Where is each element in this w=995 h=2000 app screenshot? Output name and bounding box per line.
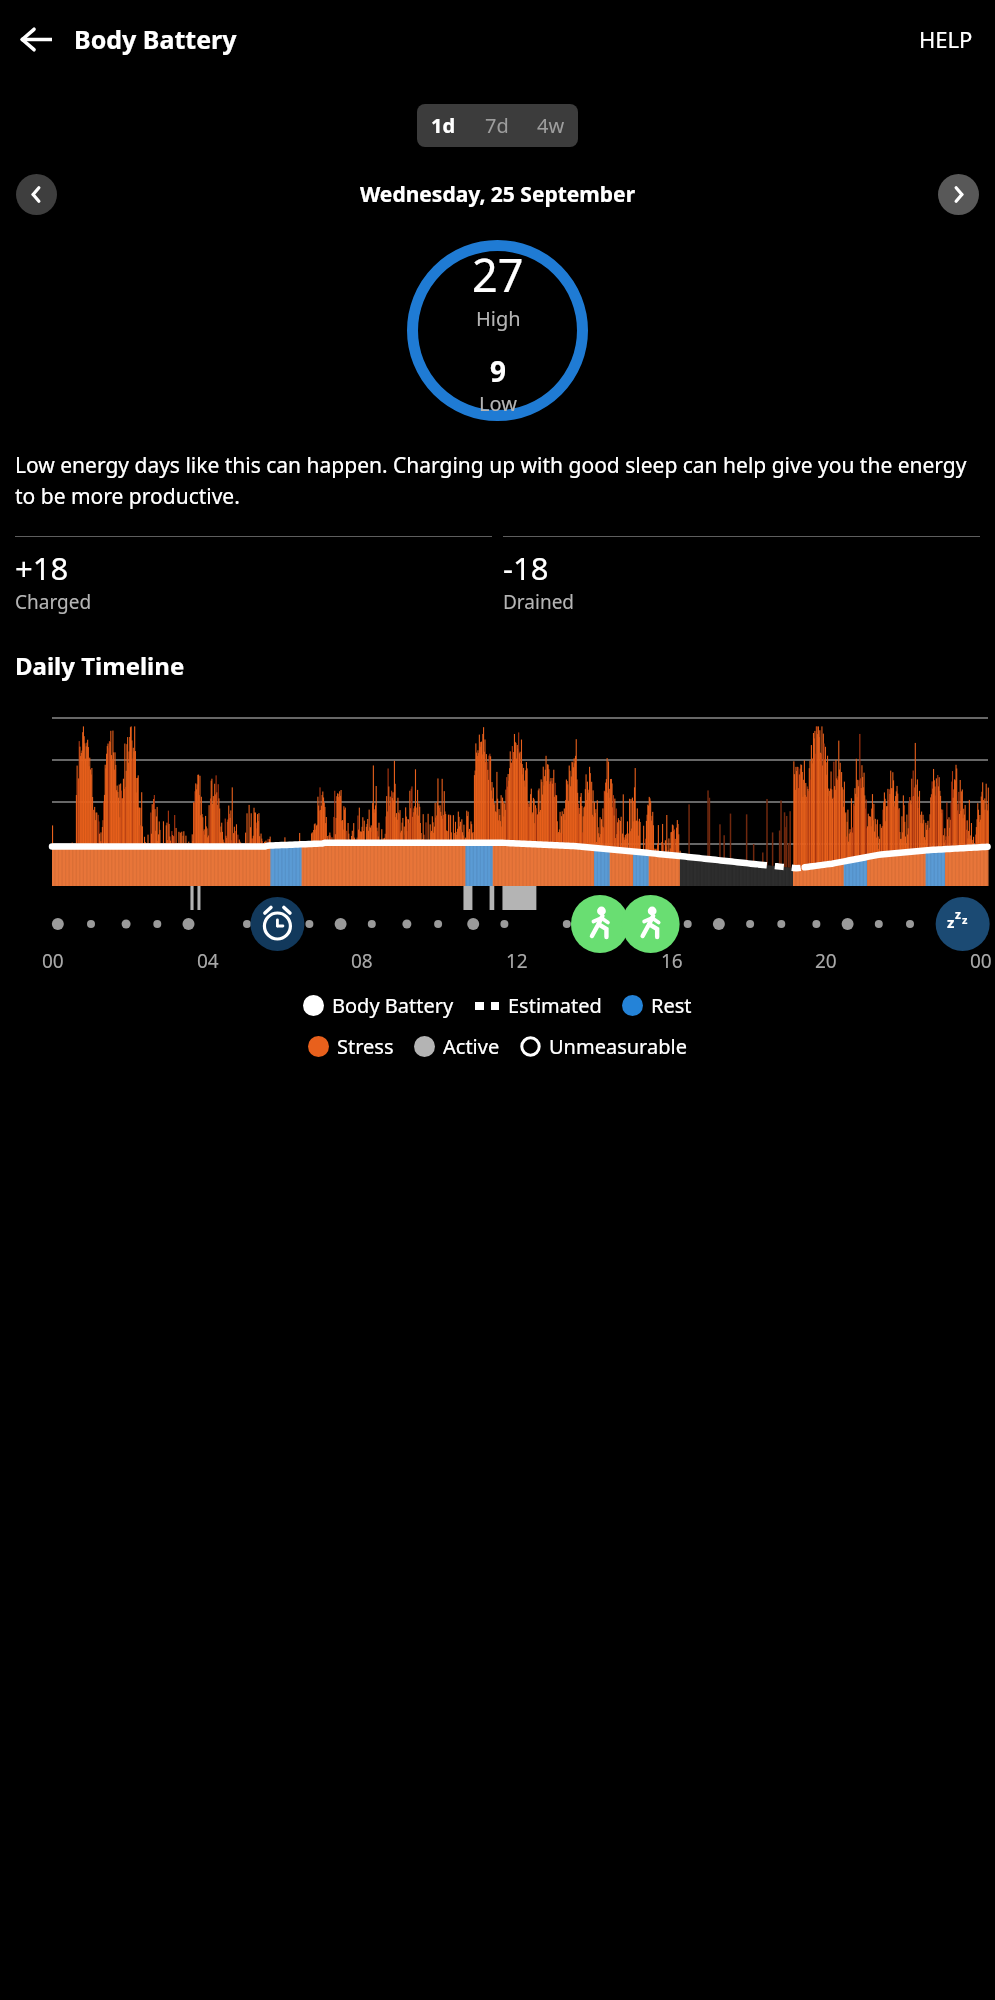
staticText: 08 xyxy=(351,948,373,974)
button[interactable]: +18 xyxy=(15,536,492,615)
staticText: +18 xyxy=(15,547,69,589)
staticText: Wednesday, 25 September xyxy=(57,180,938,209)
button[interactable]: -18 xyxy=(503,536,980,615)
staticText: 16 xyxy=(661,948,683,974)
staticText: Low energy days like this can happen. Ch… xyxy=(15,451,980,510)
staticText: Drained xyxy=(503,589,575,615)
button[interactable]: Previous day xyxy=(16,174,57,215)
button[interactable]: 7d xyxy=(470,104,524,147)
staticText: Body Battery xyxy=(332,992,454,1019)
staticText: 1d xyxy=(431,112,456,139)
staticText: High xyxy=(476,305,521,332)
staticText: Charged xyxy=(15,589,92,615)
staticText: 4w xyxy=(537,112,565,139)
staticText: 00 xyxy=(970,948,992,974)
staticText: 04 xyxy=(197,948,219,974)
staticText: -18 xyxy=(503,547,549,589)
staticText: Daily Timeline xyxy=(15,649,185,682)
staticText: Low xyxy=(479,390,517,417)
staticText: 00 xyxy=(42,948,64,974)
staticText: 7d xyxy=(485,112,509,139)
staticText: Rest xyxy=(651,992,692,1019)
staticText: 9 xyxy=(490,352,507,390)
button[interactable]: HELP xyxy=(913,16,979,62)
staticText: 27 xyxy=(472,244,524,305)
button[interactable]: 4w xyxy=(524,104,578,147)
staticText: Unmeasurable xyxy=(549,1033,687,1060)
staticText: Active xyxy=(443,1033,500,1060)
staticText: HELP xyxy=(919,24,973,54)
button[interactable]: Next day xyxy=(938,174,979,215)
staticText: Stress xyxy=(337,1033,394,1060)
staticText: Estimated xyxy=(508,992,602,1019)
button[interactable]: 1d xyxy=(417,104,470,147)
staticText: 20 xyxy=(815,948,837,974)
staticText: 12 xyxy=(506,948,528,974)
staticText: Body Battery xyxy=(74,22,237,56)
button[interactable]: Back xyxy=(8,11,64,67)
